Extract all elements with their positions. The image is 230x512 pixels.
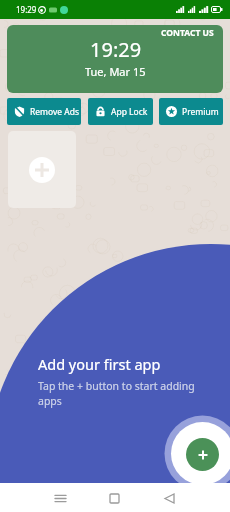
- staticText: Remove Ads: [30, 106, 80, 118]
- staticText: Premium: [182, 106, 219, 118]
- button[interactable]: Add app: [186, 438, 219, 471]
- staticText: 19:29: [16, 4, 37, 15]
- staticText: App Lock: [111, 106, 148, 118]
- staticText: 19:29: [90, 36, 142, 63]
- staticText: Tue, Mar 15: [85, 64, 146, 79]
- button[interactable]: Home: [102, 486, 126, 510]
- button[interactable]: Premium: [159, 98, 223, 125]
- staticText: Tap the + button to start adding apps: [38, 379, 208, 408]
- button[interactable]: CONTACT US: [161, 25, 223, 39]
- button[interactable]: App Lock: [88, 98, 153, 125]
- button[interactable]: Remove Ads: [7, 98, 81, 125]
- button[interactable]: Back: [157, 486, 181, 510]
- staticText: Add your first app: [38, 354, 161, 374]
- staticText: CONTACT US: [161, 27, 214, 39]
- button[interactable]: Recents: [48, 486, 72, 510]
- button[interactable]: Add app: [8, 131, 76, 208]
